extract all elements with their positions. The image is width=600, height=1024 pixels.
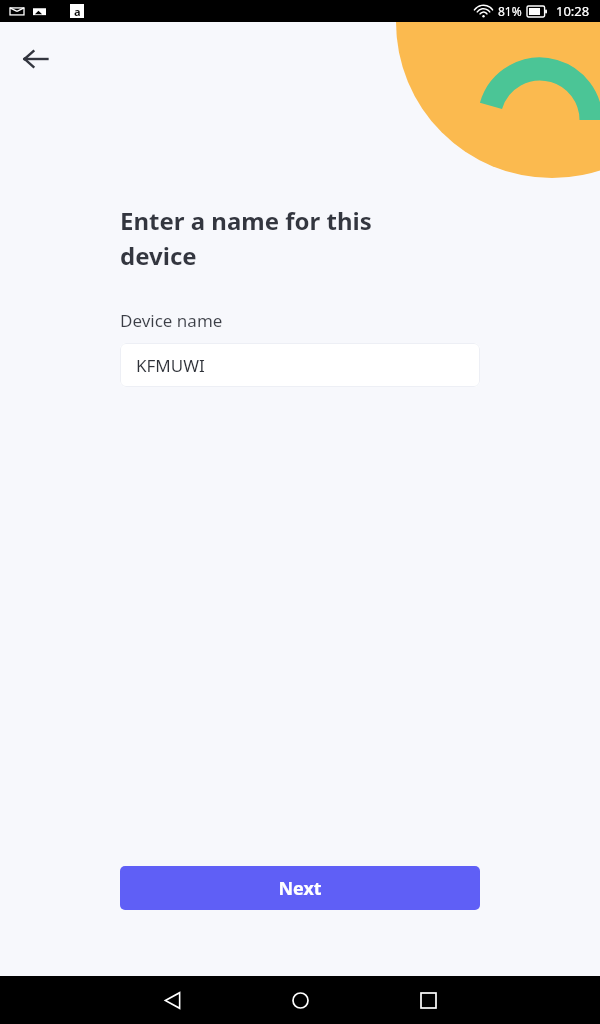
button[interactable]: Home	[276, 976, 324, 1024]
button[interactable]: Next	[120, 866, 480, 910]
button[interactable]: Back	[148, 976, 196, 1024]
staticText: a	[74, 4, 81, 18]
staticText: Enter a name for this device	[120, 204, 420, 272]
button[interactable]: Back	[10, 33, 62, 85]
button[interactable]: Recent apps	[404, 976, 452, 1024]
staticText: 10:28	[556, 2, 590, 20]
staticText: Next	[278, 876, 322, 901]
staticText: 81%	[498, 3, 522, 19]
button[interactable]: KFMUWI	[120, 343, 480, 387]
staticText: KFMUWI	[136, 354, 205, 377]
staticText: Device name	[120, 309, 223, 332]
